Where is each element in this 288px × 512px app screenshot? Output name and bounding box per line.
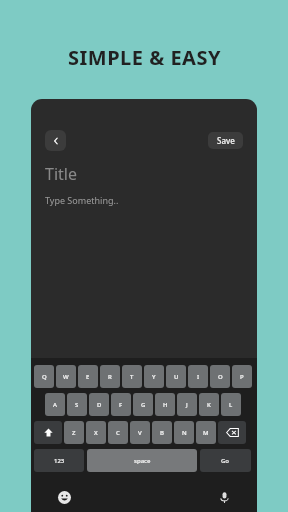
staticText: Q (42, 373, 47, 381)
button[interactable]: A (45, 393, 65, 416)
button[interactable]: V (130, 421, 150, 444)
staticText: F (119, 401, 123, 409)
button[interactable]: T (122, 365, 142, 388)
button[interactable]: Type Something.. (45, 194, 119, 206)
staticText: K (207, 401, 211, 409)
button[interactable]: D (89, 393, 109, 416)
staticText: T (130, 373, 134, 381)
button[interactable]: O (210, 365, 230, 388)
staticText: C (116, 429, 120, 437)
staticText: G (141, 401, 146, 409)
button[interactable]: K (199, 393, 219, 416)
button[interactable]: Q (34, 365, 54, 388)
staticText: V (138, 429, 142, 437)
button[interactable]: Back (45, 130, 66, 151)
button[interactable]: C (108, 421, 128, 444)
button[interactable]: E (78, 365, 98, 388)
button[interactable]: H (155, 393, 175, 416)
button[interactable]: space (87, 449, 197, 472)
button[interactable]: Shift (34, 421, 62, 444)
button[interactable]: S (67, 393, 87, 416)
staticText: R (108, 373, 112, 381)
button[interactable]: U (166, 365, 186, 388)
button[interactable]: Y (144, 365, 164, 388)
staticText: H (163, 401, 168, 409)
staticText: N (182, 429, 187, 437)
button[interactable]: Backspace (218, 421, 246, 444)
staticText: I (197, 373, 200, 381)
staticText: X (94, 429, 98, 437)
staticText: L (229, 401, 233, 409)
button[interactable]: P (232, 365, 252, 388)
staticText: Go (221, 457, 230, 465)
staticText: U (174, 373, 179, 381)
button[interactable]: F (111, 393, 131, 416)
staticText: Save (217, 135, 235, 146)
staticText: Y (152, 373, 156, 381)
staticText: space (134, 457, 151, 465)
button[interactable]: N (174, 421, 194, 444)
button[interactable]: J (177, 393, 197, 416)
button[interactable]: 123 (34, 449, 84, 472)
staticText: J (186, 401, 188, 409)
staticText: S (75, 401, 79, 409)
button[interactable]: I (188, 365, 208, 388)
button[interactable]: Save (208, 132, 243, 149)
staticText: SIMPLE & EASY (68, 44, 221, 71)
button[interactable]: M (196, 421, 216, 444)
staticText: Z (72, 429, 76, 437)
staticText: O (218, 373, 223, 381)
button[interactable]: G (133, 393, 153, 416)
staticText: A (53, 401, 57, 409)
button[interactable]: Go (200, 449, 251, 472)
button[interactable]: X (86, 421, 106, 444)
staticText: D (97, 401, 102, 409)
button[interactable]: Emoji (53, 486, 75, 508)
button[interactable]: Z (64, 421, 84, 444)
staticText: Type Something.. (45, 194, 119, 206)
staticText: 123 (54, 457, 65, 465)
staticText: Title (45, 163, 77, 185)
staticText: B (160, 429, 164, 437)
button[interactable]: L (221, 393, 241, 416)
staticText: P (240, 373, 244, 381)
button[interactable]: Voice input (213, 486, 235, 508)
button[interactable]: W (56, 365, 76, 388)
button[interactable]: R (100, 365, 120, 388)
staticText: E (86, 373, 90, 381)
staticText: M (203, 429, 209, 437)
button[interactable]: B (152, 421, 172, 444)
staticText: W (63, 373, 69, 381)
